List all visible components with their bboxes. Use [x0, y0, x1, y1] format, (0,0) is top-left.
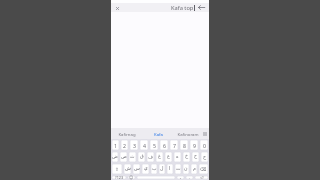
staticText: 6 [163, 142, 166, 149]
button[interactable]: 7 [169, 139, 179, 151]
staticText: 5 [153, 142, 156, 149]
button[interactable]: Keyboard options [201, 128, 209, 139]
staticText: س [134, 166, 140, 172]
button[interactable]: Kafinoram [174, 128, 201, 139]
button[interactable]: Kafirnag [111, 128, 142, 139]
staticText: غ [158, 154, 161, 160]
button[interactable]: Emoji [127, 175, 136, 180]
staticText: 0 [203, 142, 206, 149]
staticText: ج [203, 154, 207, 160]
button[interactable]: خ [182, 151, 191, 163]
button[interactable]: Enter [194, 175, 209, 180]
button[interactable]: ث [128, 151, 137, 163]
staticText: . [189, 175, 191, 180]
button[interactable]: ف [146, 151, 155, 163]
button[interactable]: Back [197, 3, 206, 12]
button[interactable]: ج [200, 151, 209, 163]
button[interactable]: Kafa [142, 128, 174, 139]
staticText: خ [185, 154, 189, 160]
staticText: Kafa top [171, 4, 194, 12]
staticText: ⏎ [200, 175, 204, 180]
button[interactable]: Symbols [111, 175, 127, 180]
button[interactable]: ض [111, 151, 119, 163]
button[interactable]: 1 [111, 139, 120, 151]
staticText: 7 [173, 142, 176, 149]
staticText: ص [121, 154, 127, 160]
staticText: 2 [123, 142, 126, 149]
button[interactable]: ه [173, 151, 182, 163]
button[interactable]: غ [155, 151, 164, 163]
button[interactable]: . [185, 175, 194, 180]
staticText: ?123 [115, 175, 124, 180]
staticText: ش [125, 166, 131, 172]
staticText: ن [184, 166, 188, 172]
staticText: ت [176, 166, 181, 172]
button[interactable]: ي [141, 163, 150, 175]
button[interactable]: 8 [179, 139, 189, 151]
button[interactable]: 3 [129, 139, 139, 151]
staticText: ل [160, 166, 164, 172]
staticText: ح [194, 154, 198, 160]
staticText: Kafirnag [118, 131, 136, 137]
button[interactable]: ل [158, 163, 166, 175]
staticText: ☺ [129, 175, 134, 180]
button[interactable]: Backspace [198, 163, 209, 175]
button[interactable]: Shift [111, 163, 123, 175]
staticText: ⇧ [115, 167, 119, 172]
staticText: م [193, 166, 196, 172]
staticText: ع [167, 154, 170, 160]
button[interactable]: ن [182, 163, 190, 175]
button[interactable]: ش [123, 163, 132, 175]
staticText: ا [169, 166, 171, 172]
staticText: ق [140, 154, 144, 160]
button[interactable]: Close [113, 4, 121, 12]
staticText: Kafa [154, 131, 163, 137]
staticText: ي [144, 166, 148, 172]
button[interactable]: 9 [189, 139, 199, 151]
button[interactable]: 5 [149, 139, 159, 151]
button[interactable]: ح [191, 151, 200, 163]
button[interactable]: ق [137, 151, 146, 163]
button[interactable]: 6 [159, 139, 169, 151]
staticText: ف [148, 154, 153, 160]
staticText: ب [152, 166, 157, 172]
button[interactable]: م [190, 163, 198, 175]
staticText: 9 [193, 142, 196, 149]
staticText: 4 [143, 142, 146, 149]
button[interactable]: Space [136, 175, 176, 180]
button[interactable]: 2 [120, 139, 129, 151]
staticText: ⌫ [200, 167, 207, 172]
staticText: 3 [133, 142, 136, 149]
staticText: ، [180, 175, 182, 180]
staticText: ض [112, 154, 118, 160]
staticText: ه [176, 154, 179, 160]
button[interactable]: ب [150, 163, 158, 175]
button[interactable]: ت [174, 163, 182, 175]
staticText: 8 [183, 142, 186, 149]
staticText: 1 [114, 142, 117, 149]
staticText: Kafinoram [177, 131, 199, 137]
staticText: ث [130, 154, 135, 160]
button[interactable]: ا [166, 163, 174, 175]
button[interactable]: 0 [199, 139, 209, 151]
button[interactable]: ع [164, 151, 173, 163]
button[interactable]: س [132, 163, 141, 175]
button[interactable]: ص [119, 151, 128, 163]
button[interactable]: ، [176, 175, 185, 180]
button[interactable]: 4 [139, 139, 149, 151]
